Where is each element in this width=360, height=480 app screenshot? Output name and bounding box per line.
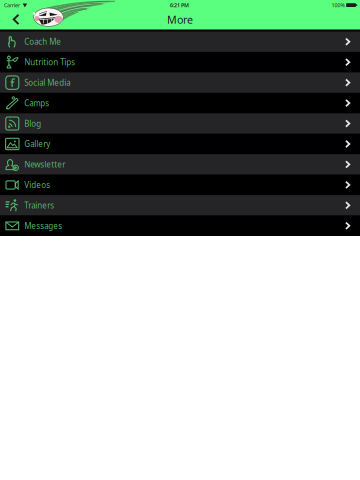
button[interactable]: Blog <box>0 113 360 134</box>
staticText: Messages <box>24 220 62 231</box>
button[interactable]: Gallery <box>0 134 360 154</box>
button[interactable]: Camps <box>0 93 360 113</box>
staticText: Blog <box>24 118 41 129</box>
button[interactable]: Messages <box>0 215 360 236</box>
staticText: More <box>167 13 193 27</box>
button[interactable]: Trainers <box>0 195 360 215</box>
button[interactable]: Social Media <box>0 72 360 93</box>
staticText: Trainers <box>24 200 54 211</box>
button[interactable]: Nutrition Tips <box>0 52 360 72</box>
staticText: Newsletter <box>24 159 65 170</box>
staticText: Videos <box>24 180 50 190</box>
staticText: Carrier <box>4 2 20 9</box>
button[interactable]: Back <box>8 9 25 30</box>
staticText: Gallery <box>24 139 50 149</box>
button[interactable]: Coach Me <box>0 31 360 52</box>
button[interactable]: Videos <box>0 175 360 195</box>
staticText: Coach Me <box>24 36 61 47</box>
button[interactable]: Newsletter <box>0 154 360 175</box>
staticText: Social Media <box>24 77 70 88</box>
staticText: Camps <box>24 98 49 108</box>
staticText: 100% <box>332 2 345 9</box>
staticText: 6:21 PM <box>170 2 189 9</box>
staticText: Nutrition Tips <box>24 57 75 67</box>
